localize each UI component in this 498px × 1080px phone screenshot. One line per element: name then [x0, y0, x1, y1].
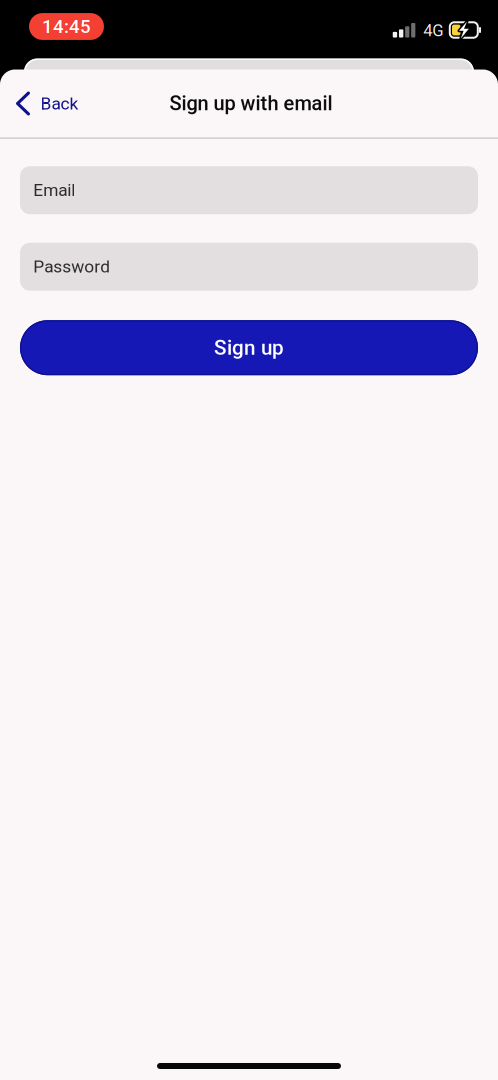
button[interactable]: Password — [20, 243, 478, 291]
staticText: Back — [40, 93, 78, 114]
staticText: Sign up — [214, 336, 284, 360]
button[interactable]: Sign up — [20, 320, 478, 375]
staticText: 14:45 — [42, 16, 91, 37]
button[interactable]: Email — [20, 166, 478, 214]
staticText: Password — [33, 256, 110, 277]
staticText: Email — [33, 180, 75, 200]
button[interactable]: Back — [0, 69, 96, 137]
staticText: 4G — [423, 21, 443, 40]
staticText: Sign up with email — [169, 92, 332, 115]
